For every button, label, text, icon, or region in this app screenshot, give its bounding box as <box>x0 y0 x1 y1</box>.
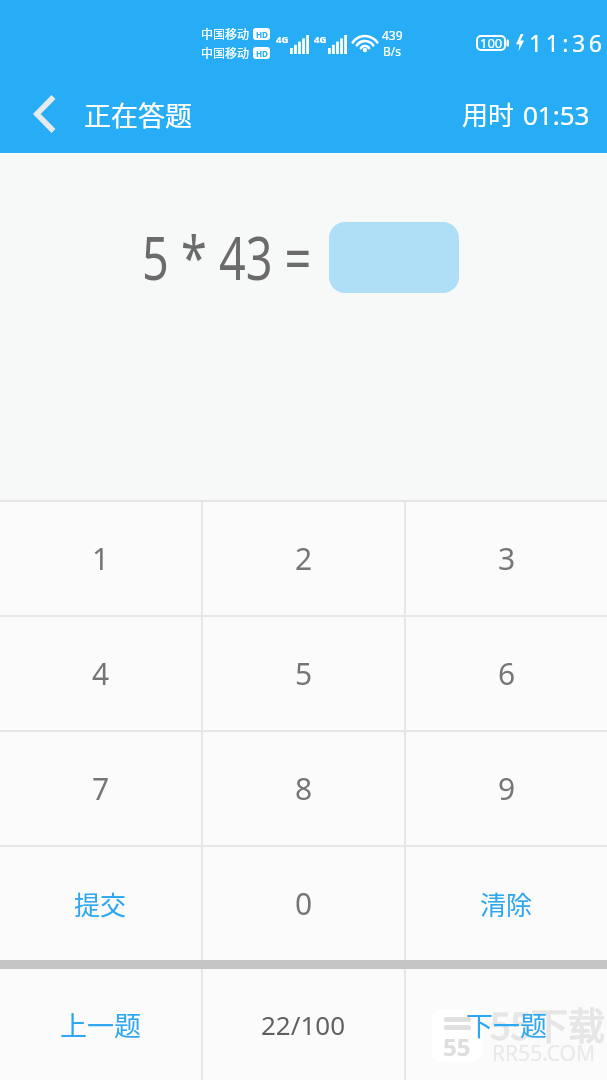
staticText: 4G <box>276 33 289 46</box>
staticText: 中国移动 <box>201 25 250 42</box>
staticText: 55 <box>443 1030 471 1062</box>
button[interactable]: 3 <box>406 502 607 615</box>
button[interactable]: 4 <box>0 617 201 730</box>
staticText: 7 <box>92 768 110 809</box>
staticText: 清除 <box>480 885 533 923</box>
staticText: 提交 <box>74 885 127 923</box>
button[interactable]: 清除 <box>406 847 607 960</box>
button[interactable] <box>329 222 459 293</box>
staticText: 8 <box>295 768 313 809</box>
staticText: HD <box>256 29 268 40</box>
button[interactable]: 2 <box>203 502 404 615</box>
staticText: 55下载 <box>490 997 606 1051</box>
button[interactable]: 6 <box>406 617 607 730</box>
button[interactable]: 0 <box>203 847 404 960</box>
staticText: 正在答题 <box>84 95 192 134</box>
button[interactable]: 上一题 <box>0 969 201 1080</box>
staticText: 22/100 <box>261 1007 346 1042</box>
button[interactable]: 9 <box>406 732 607 845</box>
staticText: B/s <box>383 43 402 59</box>
staticText: 4G <box>314 33 327 46</box>
button[interactable]: 1 <box>0 502 201 615</box>
staticText: 下一题 <box>466 1005 547 1044</box>
button[interactable]: 7 <box>0 732 201 845</box>
staticText: 9 <box>498 768 516 809</box>
staticText: 01:53 <box>523 97 590 132</box>
staticText: 上一题 <box>60 1005 141 1044</box>
button[interactable]: 提交 <box>0 847 201 960</box>
staticText: 11:36 <box>529 27 606 58</box>
staticText: 2 <box>295 538 313 579</box>
staticText: 6 <box>498 653 516 694</box>
staticText: 5 * 43 = <box>142 216 312 298</box>
staticText: 3 <box>498 538 516 579</box>
staticText: 4 <box>92 653 110 694</box>
staticText: 用时 <box>462 95 515 133</box>
staticText: HD <box>256 48 268 59</box>
staticText: 1 <box>92 538 110 579</box>
staticText: 439 <box>382 27 403 43</box>
staticText: 5 <box>295 653 313 694</box>
button[interactable]: 55 <box>406 969 607 1080</box>
staticText: 100 <box>480 34 503 52</box>
staticText: 0 <box>295 883 313 924</box>
staticText: 中国移动 <box>201 44 250 61</box>
button[interactable]: 8 <box>203 732 404 845</box>
staticText: RR55.COM <box>492 1039 596 1068</box>
button[interactable]: 5 <box>203 617 404 730</box>
button[interactable] <box>12 83 76 145</box>
button[interactable]: 22/100 <box>203 969 404 1080</box>
